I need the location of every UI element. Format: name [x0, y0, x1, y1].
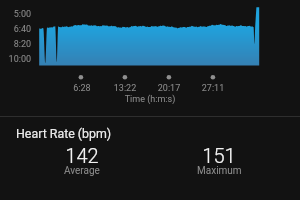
staticText: Average	[64, 165, 100, 177]
staticText: Maximum	[197, 165, 242, 177]
staticText: Time (h:m:s)	[0, 94, 300, 105]
staticText: 27:11	[193, 83, 233, 94]
staticText: 6:40	[0, 24, 31, 35]
staticText: Heart Rate (bpm)	[16, 126, 112, 141]
button[interactable]: 151	[159, 144, 279, 179]
staticText: 8:20	[0, 39, 31, 50]
staticText: 151	[202, 144, 236, 167]
button[interactable]: 142	[22, 144, 142, 179]
staticText: 20:17	[149, 83, 189, 94]
staticText: 10:00	[0, 54, 31, 65]
staticText: 5:00	[0, 9, 31, 20]
staticText: 142	[65, 144, 99, 167]
staticText: 13:22	[105, 83, 145, 94]
staticText: 6:28	[62, 83, 102, 94]
button[interactable]: 5:00	[0, 0, 300, 116]
